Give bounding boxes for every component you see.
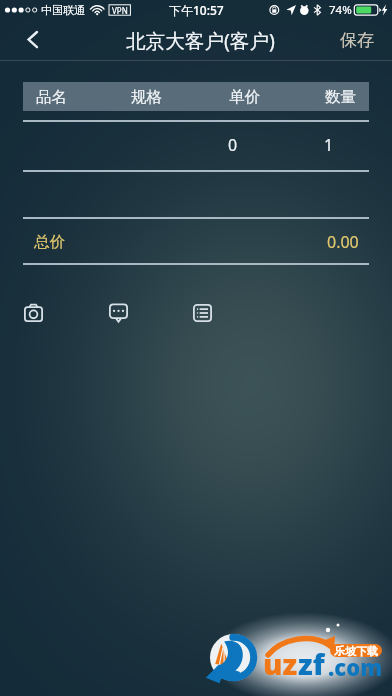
staticText: zf bbox=[298, 644, 325, 683]
staticText: uz bbox=[263, 644, 298, 683]
staticText: 1 bbox=[324, 134, 334, 156]
button[interactable]: 保存 bbox=[326, 20, 392, 61]
staticText: 0.00 bbox=[327, 231, 359, 253]
staticText: 品名 bbox=[36, 87, 67, 107]
staticText: 乐坡下载 bbox=[334, 644, 378, 657]
staticText: 0 bbox=[228, 134, 238, 156]
staticText: 规格 bbox=[131, 87, 162, 107]
staticText: 单价 bbox=[229, 87, 260, 107]
staticText: 数量 bbox=[325, 87, 356, 107]
button[interactable]: Camera bbox=[12, 292, 54, 334]
staticText: 下午10:57 bbox=[169, 2, 224, 18]
button[interactable]: Back bbox=[0, 20, 50, 61]
staticText: VPN bbox=[112, 5, 128, 16]
staticText: .com bbox=[328, 652, 383, 682]
staticText: 北京大客户(客户) bbox=[126, 27, 275, 54]
staticText: 74% bbox=[329, 2, 352, 18]
staticText: 中国联通 bbox=[41, 3, 85, 17]
button[interactable]: List bbox=[181, 292, 223, 334]
button[interactable]: Comment bbox=[97, 292, 139, 334]
staticText: 总价 bbox=[34, 232, 65, 252]
staticText: 保存 bbox=[340, 30, 374, 51]
